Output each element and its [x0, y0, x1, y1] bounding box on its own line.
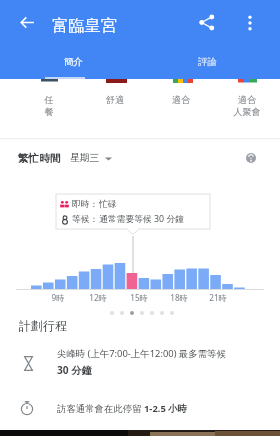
- staticText: 適合: [148, 94, 214, 106]
- staticText: 舒適: [82, 94, 148, 106]
- button[interactable]: 星期三: [70, 152, 112, 164]
- button[interactable]: 舒適: [82, 0, 148, 125]
- staticText: 尖峰時 (上午7:00-上午12:00) 最多需等候: [57, 347, 226, 360]
- button[interactable]: Help: [244, 151, 258, 165]
- staticText: 30 分鐘: [57, 363, 92, 377]
- button[interactable]: 任 餐: [16, 0, 82, 125]
- staticText: 評論: [198, 56, 217, 68]
- staticText: 18時: [159, 292, 199, 303]
- staticText: 任 餐: [16, 94, 82, 118]
- button[interactable]: More options: [228, 0, 271, 47]
- staticText: 富臨皇宮: [52, 15, 117, 35]
- button[interactable]: 簡介: [6, 47, 140, 79]
- button[interactable]: 適合: [148, 0, 214, 125]
- staticText: 訪客通常會在此停留: [57, 402, 144, 415]
- staticText: 12時: [78, 292, 118, 303]
- staticText: 21時: [198, 292, 238, 303]
- button[interactable]: 評論: [140, 47, 275, 79]
- button[interactable]: Share: [186, 0, 228, 47]
- staticText: 等候：: [72, 214, 99, 225]
- staticText: 15時: [119, 292, 159, 303]
- staticText: 9時: [38, 292, 78, 303]
- staticText: 忙碌: [99, 199, 117, 210]
- staticText: 通常需要等候 30 分鐘: [99, 213, 185, 225]
- staticText: 計劃行程: [19, 318, 67, 333]
- staticText: 簡介: [64, 56, 83, 68]
- staticText: 星期三: [70, 152, 100, 164]
- button[interactable]: Back: [0, 0, 52, 47]
- staticText: 適合 人聚會: [214, 94, 280, 118]
- button[interactable]: 適合 人聚會: [214, 0, 280, 125]
- staticText: 即時：: [72, 199, 99, 210]
- staticText: 繁忙時間: [18, 152, 61, 165]
- staticText: 1-2.5 小時: [144, 402, 187, 415]
